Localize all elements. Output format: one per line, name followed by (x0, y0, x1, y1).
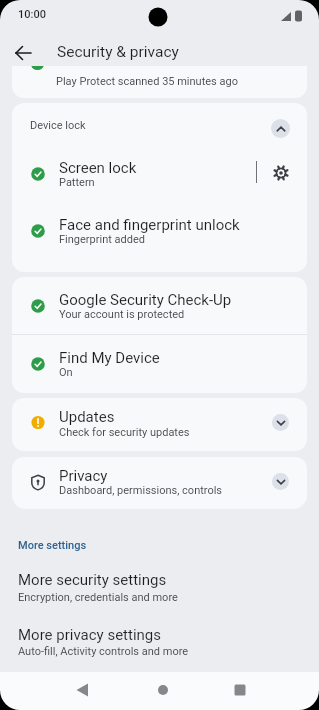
button[interactable] (269, 161, 293, 185)
button[interactable]: Privacy (12, 457, 307, 509)
button[interactable] (12, 201, 307, 263)
staticText: Pattern (59, 176, 95, 189)
button[interactable]: Play Protect scanned 35 minutes ago (12, 66, 307, 98)
staticText: Auto-fill, Activity controls and more (18, 645, 189, 658)
button[interactable] (147, 673, 179, 705)
staticText: Face and fingerprint unlock (59, 216, 240, 234)
staticText: Security & privacy (57, 43, 179, 61)
staticText: Google Security Check-Up (59, 291, 232, 309)
staticText: Check for security updates (59, 426, 190, 439)
button[interactable]: Updates (12, 398, 307, 451)
staticText: Your account is protected (59, 308, 185, 321)
staticText: More settings (18, 539, 87, 552)
button[interactable] (0, 563, 319, 609)
button[interactable] (0, 618, 319, 664)
button[interactable] (12, 335, 307, 393)
button[interactable] (224, 673, 256, 705)
button[interactable] (271, 119, 290, 138)
staticText: Find My Device (59, 349, 160, 367)
staticText: Play Protect scanned 35 minutes ago (56, 75, 238, 88)
button[interactable] (12, 147, 256, 201)
button[interactable] (66, 673, 98, 705)
staticText: More privacy settings (18, 626, 162, 644)
staticText: Encryption, credentials and more (18, 591, 178, 604)
button[interactable] (12, 277, 307, 334)
staticText: Privacy (59, 467, 108, 485)
button[interactable] (8, 40, 38, 68)
button[interactable] (272, 414, 289, 431)
staticText: On (59, 366, 73, 379)
staticText: More security settings (18, 571, 167, 589)
staticText: Dashboard, permissions, controls (59, 484, 223, 497)
staticText: 10:00 (18, 8, 46, 21)
button[interactable] (272, 473, 289, 490)
staticText: Fingerprint added (59, 233, 145, 246)
staticText: Screen lock (59, 159, 137, 177)
staticText: Device lock (30, 119, 86, 132)
staticText: Updates (59, 408, 115, 426)
